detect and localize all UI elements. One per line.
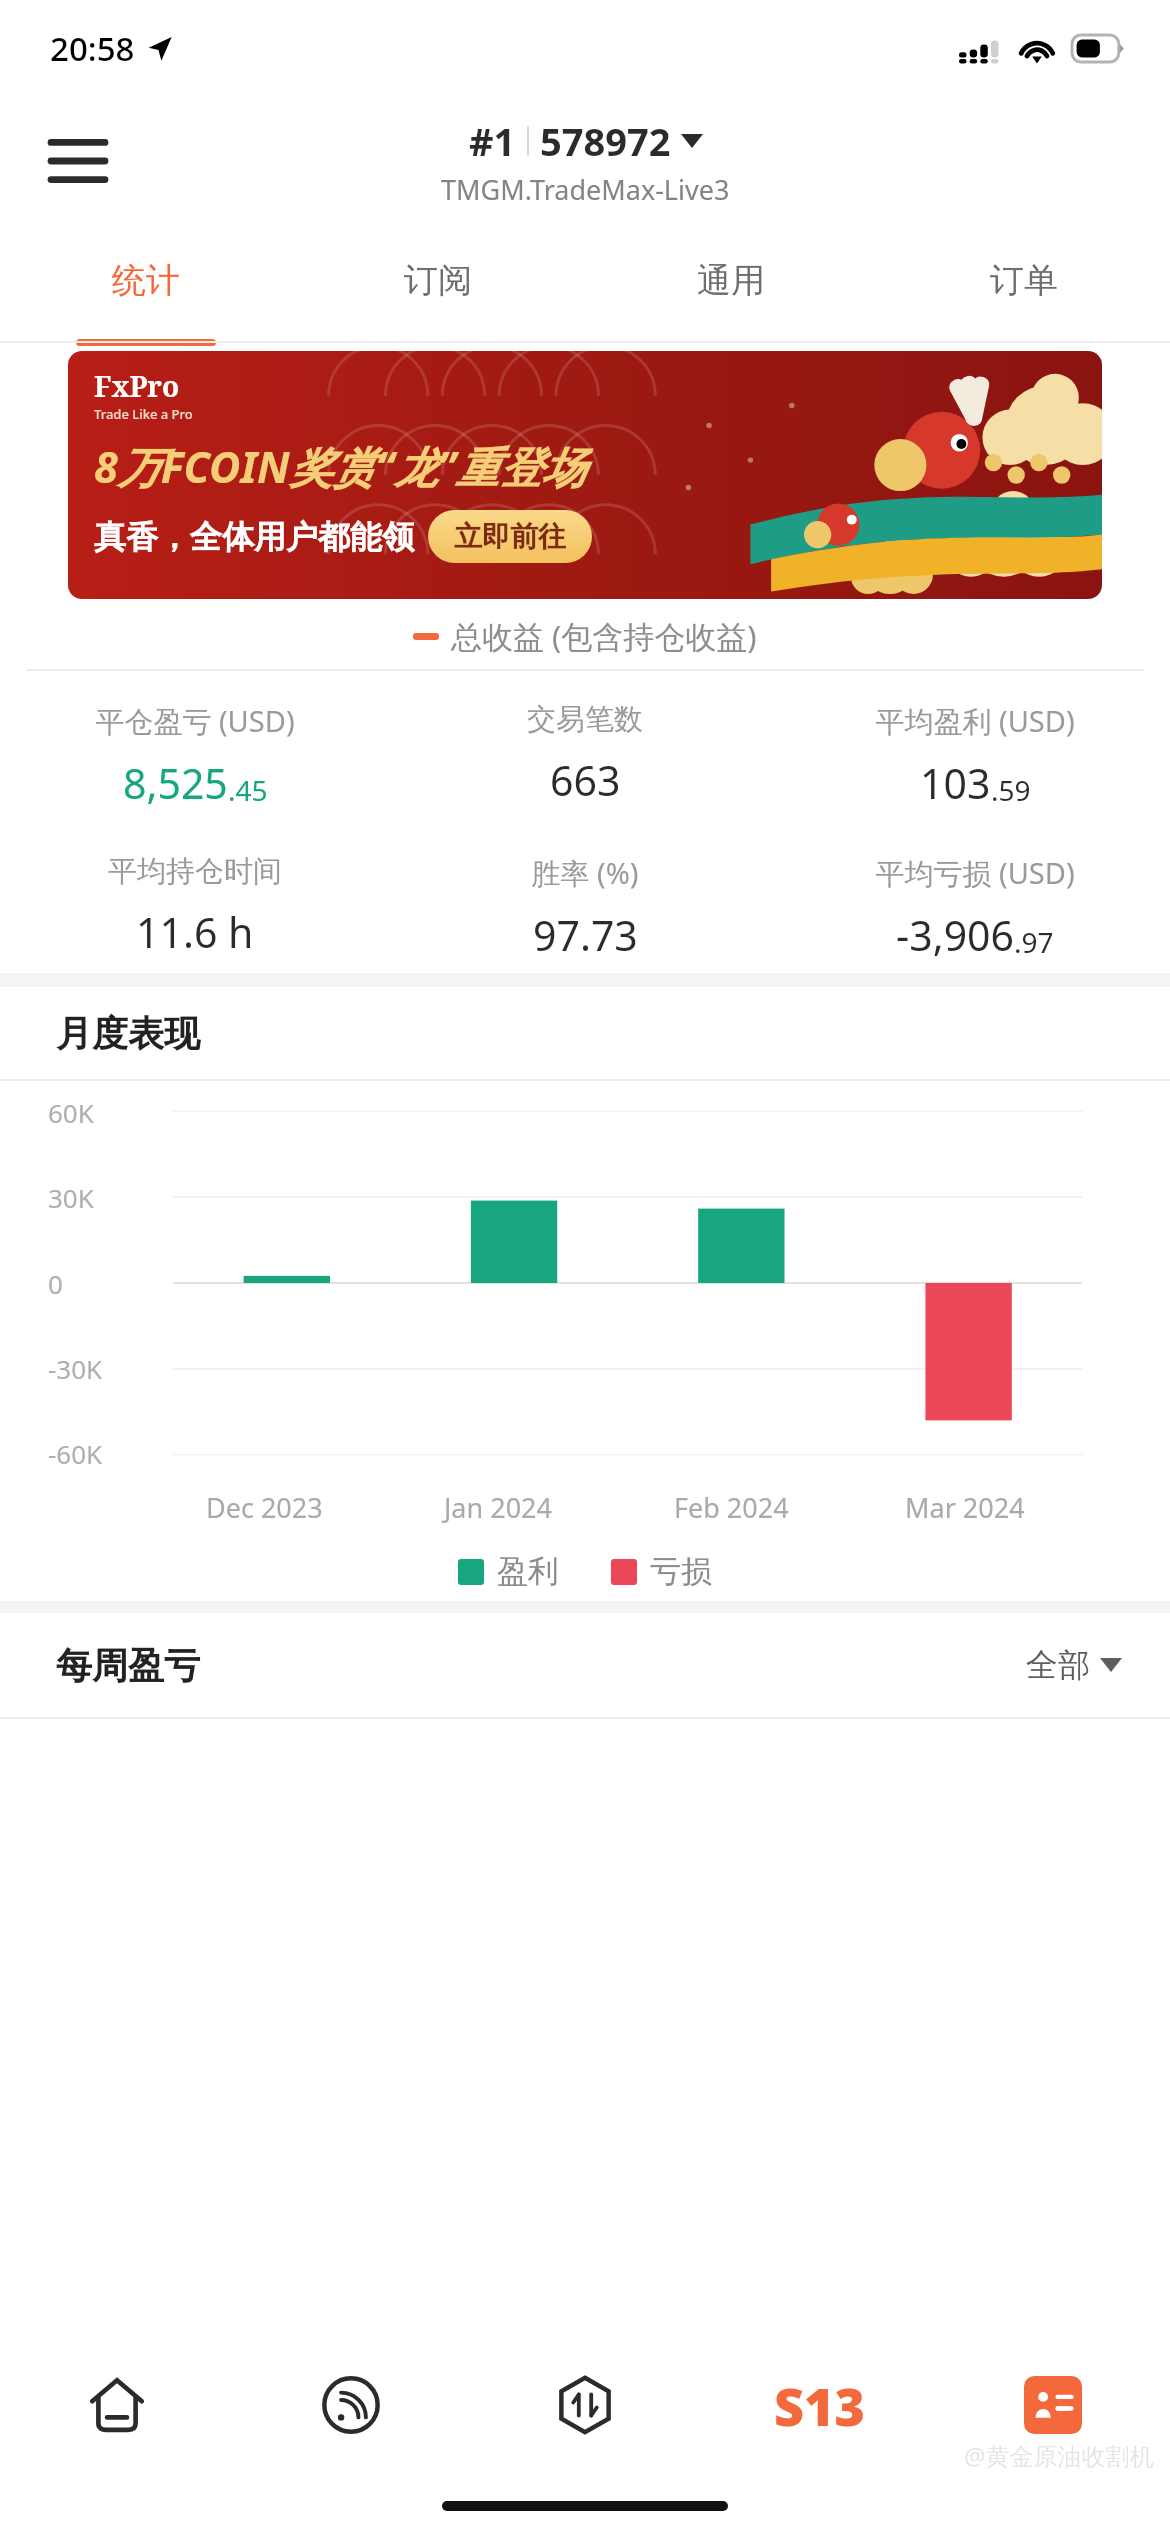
button[interactable]: 通用 — [584, 226, 877, 334]
button[interactable]: 平均盈利 (USD) — [780, 701, 1170, 811]
button[interactable]: #1 — [441, 115, 730, 208]
staticText: .45 — [228, 771, 268, 809]
staticText: 8万FCOIN奖赏“龙”重登场 — [94, 437, 585, 496]
staticText: 订单 — [990, 259, 1058, 302]
button[interactable]: Menu — [40, 123, 116, 199]
staticText: TMGM.TradeMax-Live3 — [441, 171, 730, 208]
staticText: .97 — [1014, 923, 1054, 961]
button[interactable]: 订阅 — [292, 226, 584, 334]
button[interactable]: Trade — [468, 2330, 702, 2480]
staticText: Trade Like a Pro — [94, 405, 193, 423]
staticText: -60K — [48, 1436, 103, 1471]
staticText: 全部 — [1026, 1645, 1090, 1685]
button[interactable]: S13 — [702, 2330, 936, 2480]
staticText: S13 — [774, 2370, 865, 2441]
button[interactable]: FxPro — [68, 351, 1102, 599]
staticText: 30K — [48, 1180, 94, 1215]
staticText: 盈利 — [497, 1552, 559, 1591]
staticText: 统计 — [112, 259, 180, 302]
staticText: -3,906 — [896, 907, 1014, 963]
staticText: .59 — [991, 771, 1031, 809]
staticText: #1 — [469, 115, 516, 167]
staticText: 亏损 — [650, 1552, 712, 1591]
staticText: 每周盈亏 — [56, 1643, 200, 1688]
button[interactable]: 全部 — [1026, 1645, 1122, 1685]
staticText: 60K — [48, 1095, 94, 1130]
staticText: 通用 — [697, 259, 765, 302]
staticText: Dec 2023 — [206, 1489, 323, 1526]
staticText: 月度表现 — [56, 1011, 200, 1056]
button[interactable]: Profile — [936, 2330, 1170, 2480]
staticText: Mar 2024 — [905, 1489, 1025, 1526]
staticText: Jan 2024 — [444, 1489, 552, 1526]
staticText: 交易笔数 — [527, 701, 643, 738]
staticText: 立即前往 — [454, 519, 566, 554]
button[interactable]: 统计 — [0, 226, 292, 334]
staticText: 总收益 (包含持仓收益) — [451, 615, 757, 657]
button[interactable]: 平均亏损 (USD) — [780, 853, 1170, 963]
staticText: 97.73 — [533, 907, 638, 963]
button[interactable]: 总收益 (包含持仓收益) — [0, 615, 1170, 657]
button[interactable]: 立即前往 — [428, 510, 592, 563]
staticText: 平仓盈亏 (USD) — [95, 701, 295, 741]
button[interactable]: Signals — [234, 2330, 468, 2480]
staticText: 578972 — [540, 115, 671, 167]
staticText: -30K — [48, 1351, 103, 1386]
button[interactable]: 交易笔数 — [390, 701, 780, 808]
button[interactable]: 订单 — [877, 226, 1170, 334]
staticText: 订阅 — [404, 259, 472, 302]
button[interactable]: 平均持仓时间 — [0, 853, 390, 960]
staticText: 663 — [550, 752, 621, 808]
staticText: @黄金原油收割机 — [964, 2439, 1154, 2472]
staticText: 20:58 — [50, 26, 135, 71]
staticText: 胜率 (%) — [531, 853, 639, 893]
staticText: 103 — [920, 755, 991, 811]
button[interactable]: Home — [0, 2330, 234, 2480]
staticText: Feb 2024 — [674, 1489, 789, 1526]
staticText: 8,525 — [123, 755, 228, 811]
staticText: 真香，全体用户都能领 — [94, 517, 414, 557]
staticText: 平均亏损 (USD) — [875, 853, 1075, 893]
staticText: 平均持仓时间 — [108, 853, 282, 890]
button[interactable]: 平仓盈亏 (USD) — [0, 701, 390, 811]
staticText: 11.6 h — [136, 904, 254, 960]
button[interactable]: 胜率 (%) — [390, 853, 780, 963]
staticText: FxPro — [94, 367, 180, 405]
staticText: 平均盈利 (USD) — [875, 701, 1075, 741]
staticText: 0 — [48, 1266, 63, 1301]
